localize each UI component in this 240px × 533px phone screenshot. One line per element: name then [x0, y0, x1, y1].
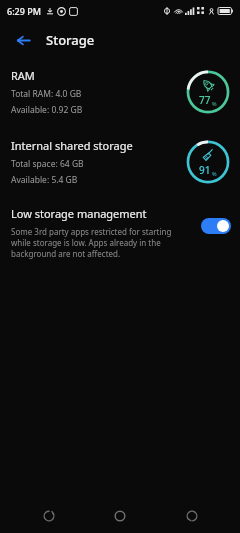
button[interactable]: RAM [0, 64, 240, 120]
staticText: 77 [199, 93, 211, 107]
staticText: Storage [46, 31, 95, 49]
staticText: Low storage management [11, 206, 147, 221]
staticText: % [212, 100, 217, 107]
button[interactable]: Low storage management toggle [201, 218, 231, 234]
staticText: 6:29 PM [7, 5, 41, 17]
staticText: Available: 5.4 GB [11, 174, 78, 186]
button[interactable]: Recents [26, 501, 72, 531]
staticText: Total RAM: 4.0 GB [11, 88, 82, 100]
button[interactable]: Back [169, 501, 215, 531]
staticText: Some 3rd party apps restricted for start… [11, 226, 193, 259]
staticText: 91 [199, 163, 211, 177]
button[interactable]: Internal shared storage [0, 134, 240, 190]
staticText: Total space: 64 GB [11, 158, 84, 170]
staticText: Available: 0.92 GB [11, 104, 83, 116]
button[interactable]: Low storage management [0, 204, 240, 261]
staticText: Internal shared storage [11, 138, 133, 153]
button[interactable]: Back [10, 27, 36, 53]
staticText: RAM [11, 68, 35, 83]
staticText: % [212, 170, 217, 177]
button[interactable]: Home [97, 501, 143, 531]
